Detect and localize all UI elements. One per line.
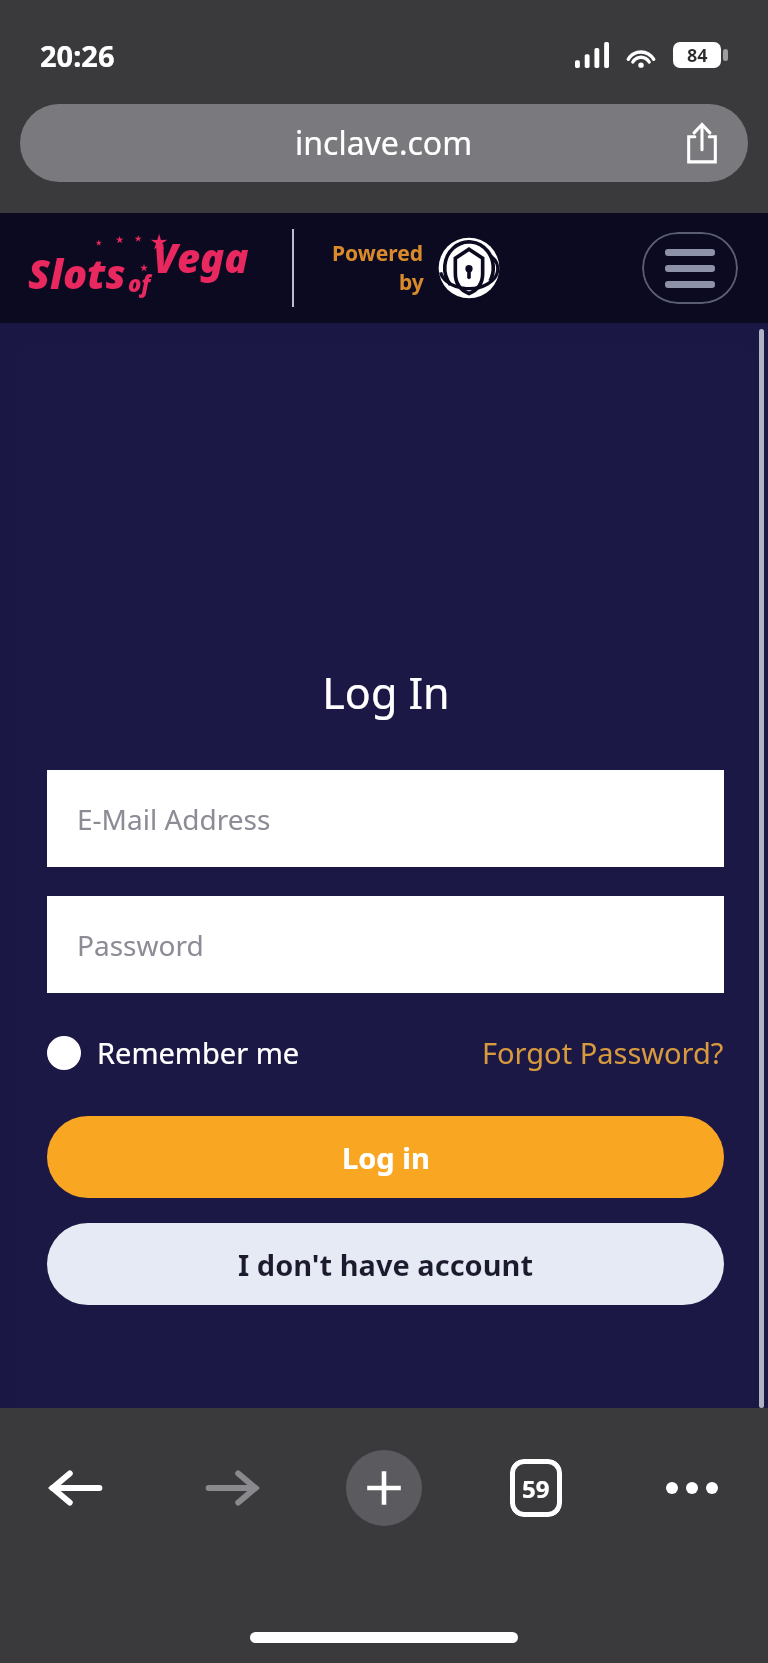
button[interactable]: More xyxy=(650,1446,734,1530)
staticText: inclave.com xyxy=(295,121,473,165)
staticText: Password xyxy=(77,926,204,964)
button[interactable]: Menu xyxy=(642,232,738,304)
button[interactable]: Share xyxy=(680,121,724,165)
staticText: Log In xyxy=(322,663,450,722)
staticText: Forgot Password? xyxy=(482,1033,724,1072)
staticText: 20:26 xyxy=(40,36,115,75)
button[interactable]: Tabs xyxy=(494,1446,578,1530)
staticText: Powered xyxy=(332,239,424,268)
button[interactable]: inclave.com xyxy=(20,104,748,182)
button[interactable]: Forgot Password? xyxy=(482,1033,724,1072)
staticText: Log in xyxy=(342,1138,430,1177)
staticText: of xyxy=(128,268,151,298)
button[interactable]: New tab xyxy=(346,1450,422,1526)
button[interactable]: Remember me xyxy=(47,1033,300,1072)
button[interactable]: I don't have account xyxy=(47,1223,724,1305)
button[interactable]: Log in xyxy=(47,1116,724,1198)
staticText: Slots xyxy=(28,246,126,300)
staticText: by xyxy=(399,268,424,297)
button[interactable]: Forward xyxy=(190,1446,274,1530)
staticText: Vegas xyxy=(153,230,260,300)
staticText: 84 xyxy=(687,43,708,68)
button[interactable]: Back xyxy=(34,1446,118,1530)
staticText: 59 xyxy=(522,1472,550,1505)
button[interactable]: Password xyxy=(47,896,724,993)
staticText: E-Mail Address xyxy=(77,800,271,838)
button[interactable]: E-Mail Address xyxy=(47,770,724,867)
staticText: Remember me xyxy=(97,1033,300,1072)
staticText: I don't have account xyxy=(238,1245,534,1284)
